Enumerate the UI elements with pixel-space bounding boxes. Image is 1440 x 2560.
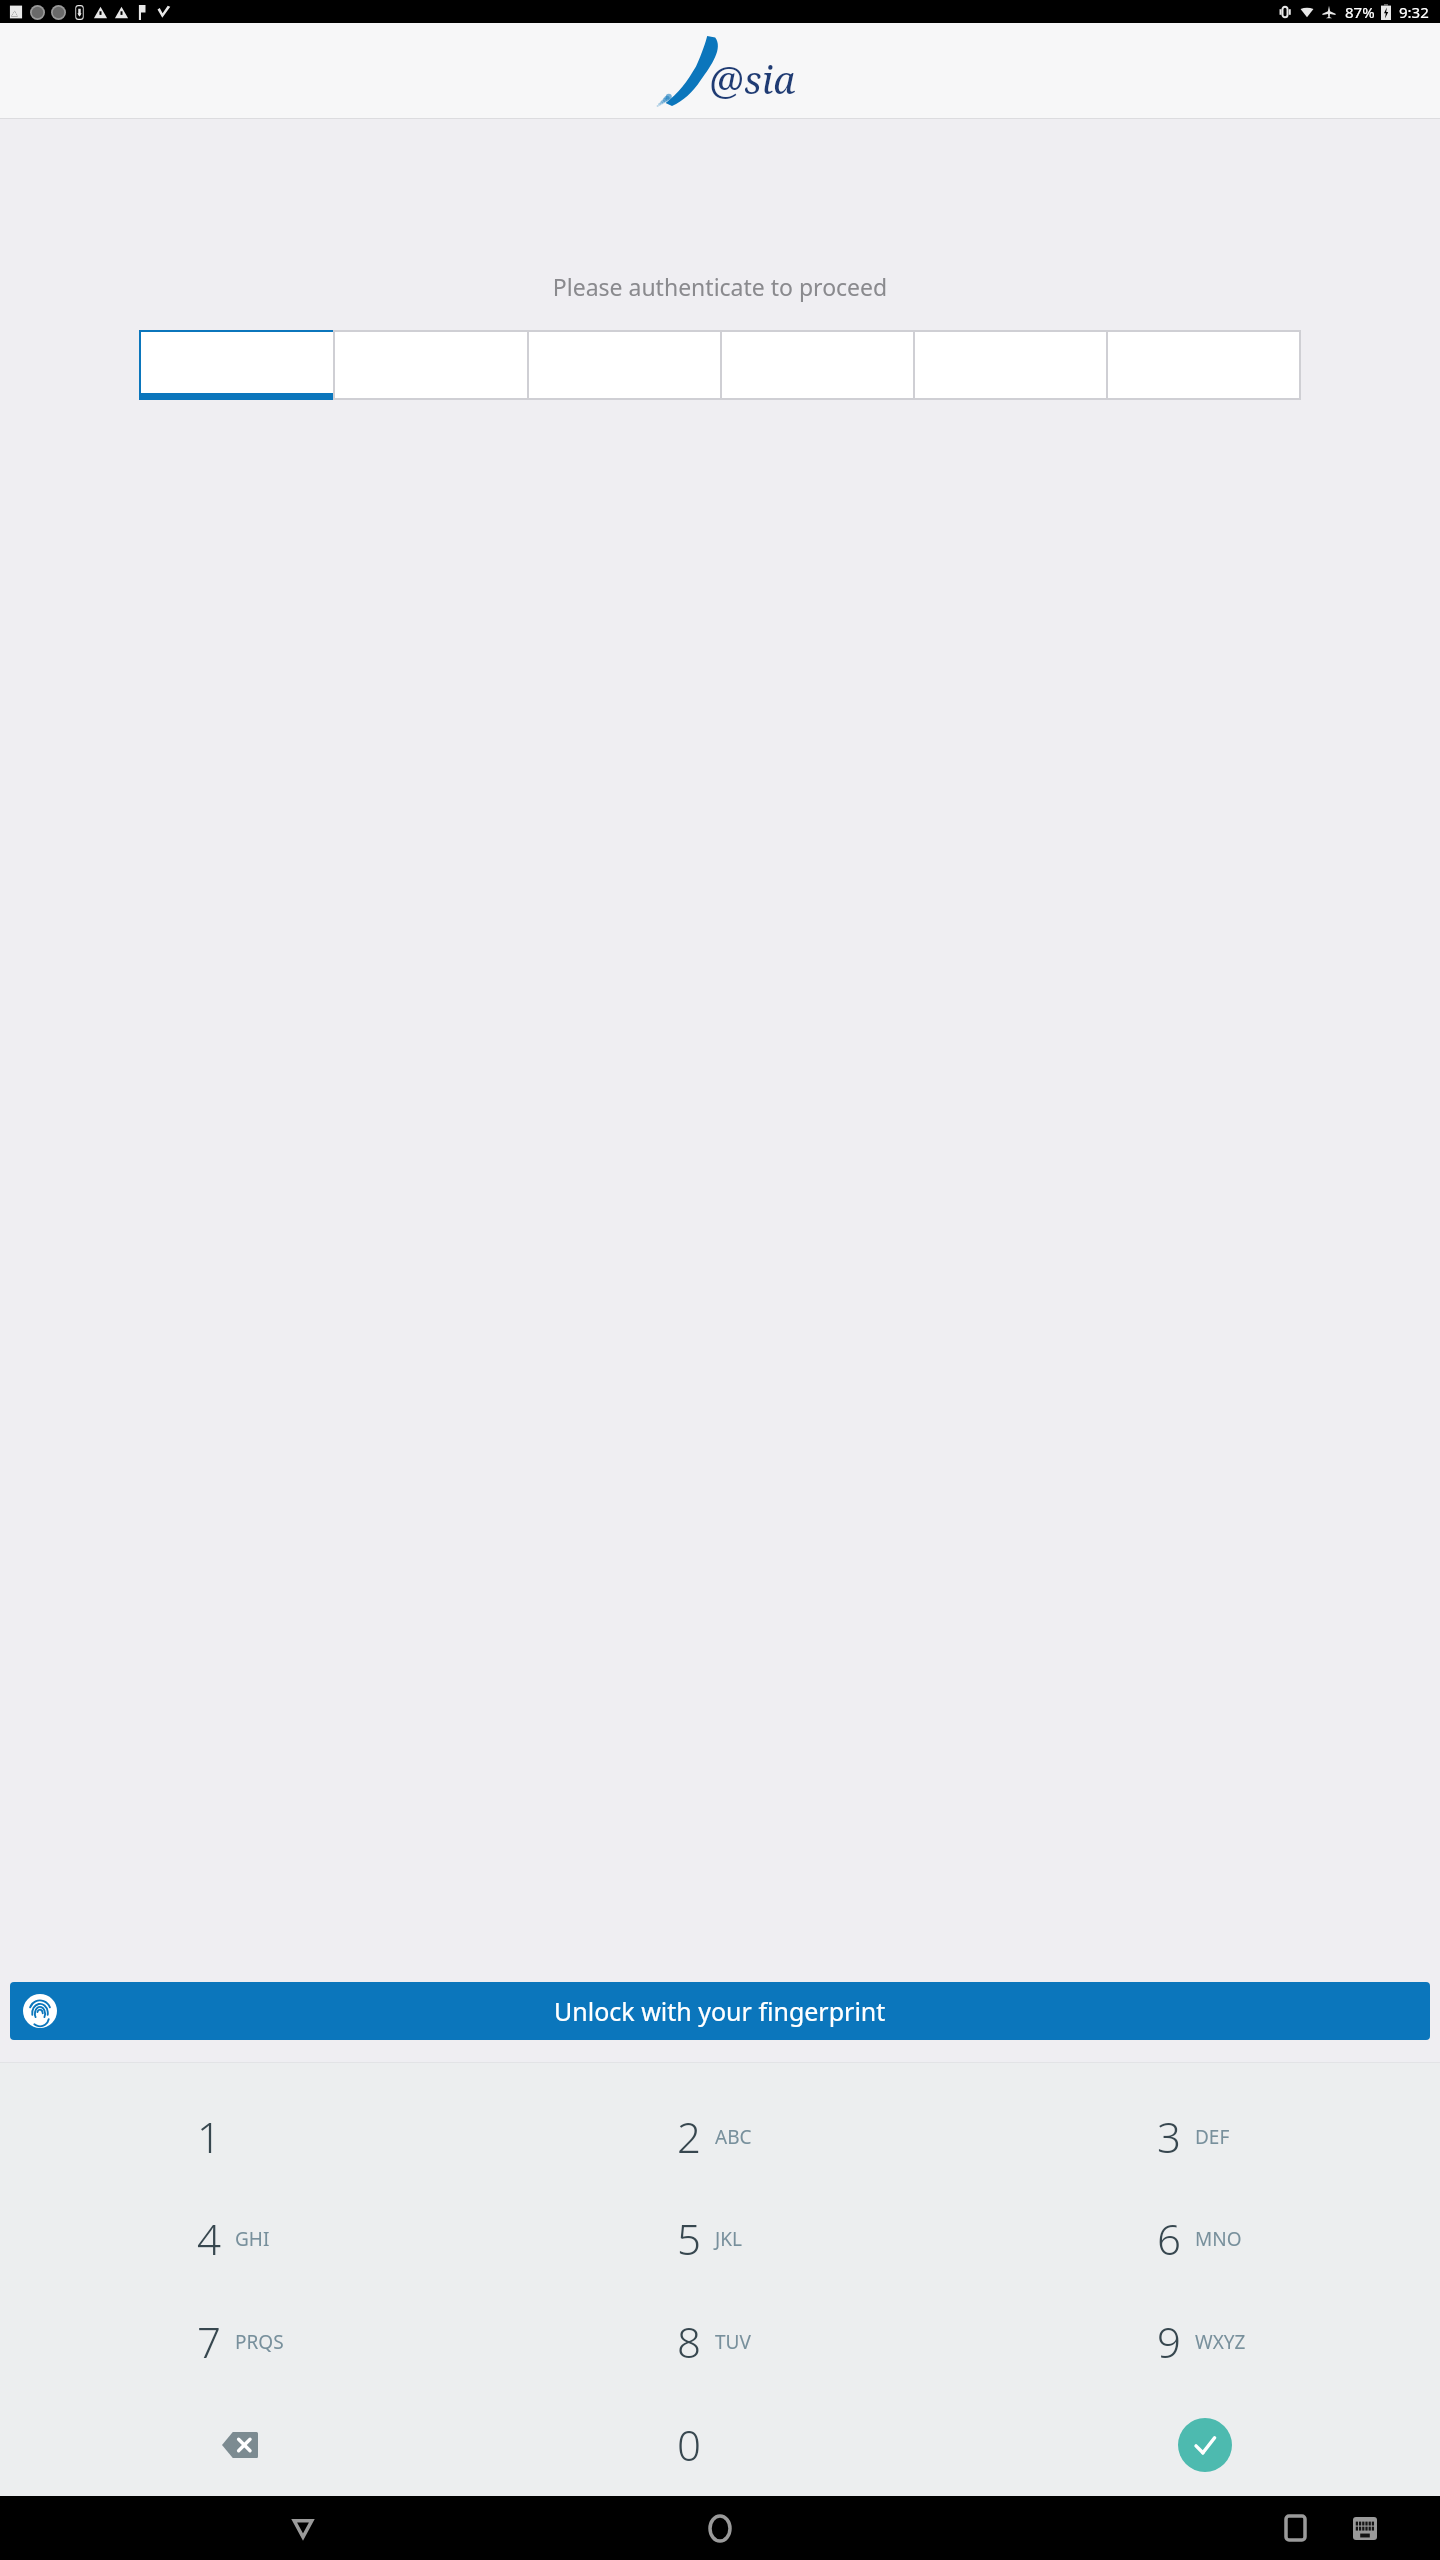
button[interactable] xyxy=(1107,331,1300,399)
staticText: ABC xyxy=(715,2124,752,2150)
button[interactable]: 3 xyxy=(960,2085,1440,2187)
staticText: 9:32 xyxy=(1399,2,1429,22)
button[interactable] xyxy=(140,331,334,399)
staticText: GHI xyxy=(235,2226,270,2252)
button[interactable]: 0 xyxy=(480,2393,960,2496)
button[interactable]: 8 xyxy=(480,2290,960,2393)
staticText: WXYZ xyxy=(1195,2329,1246,2355)
button[interactable]: Confirm xyxy=(1178,2418,1232,2472)
button[interactable]: 6 xyxy=(960,2187,1440,2290)
staticText: Unlock with your fingerprint xyxy=(554,1994,886,2028)
button[interactable] xyxy=(914,331,1107,399)
staticText: 2 xyxy=(677,2108,701,2165)
button[interactable]: Home xyxy=(670,2496,770,2560)
staticText: 4 xyxy=(197,2210,221,2267)
button[interactable]: 5 xyxy=(480,2187,960,2290)
button[interactable]: Recents xyxy=(1260,2496,1330,2560)
staticText: 5 xyxy=(677,2210,701,2267)
button[interactable]: Keyboard xyxy=(1330,2496,1400,2560)
button[interactable]: Unlock with your fingerprint xyxy=(10,1982,1430,2040)
button[interactable]: 4 xyxy=(0,2187,480,2290)
staticText: TUV xyxy=(715,2329,751,2355)
button[interactable]: 7 xyxy=(0,2290,480,2393)
button[interactable] xyxy=(528,331,721,399)
button[interactable]: Back xyxy=(0,2496,605,2560)
staticText: 3 xyxy=(1157,2108,1181,2165)
staticText: 1 xyxy=(197,2108,221,2165)
staticText: 87% xyxy=(1345,2,1375,22)
staticText: 7 xyxy=(197,2313,221,2370)
staticText: 6 xyxy=(1157,2210,1181,2267)
button[interactable]: Backspace xyxy=(0,2393,480,2496)
staticText: DEF xyxy=(1195,2124,1230,2150)
staticText: 0 xyxy=(677,2416,701,2473)
staticText: 9 xyxy=(1157,2313,1181,2370)
button[interactable] xyxy=(721,331,914,399)
button[interactable]: 9 xyxy=(960,2290,1440,2393)
staticText: JKL xyxy=(715,2226,742,2252)
staticText: PRQS xyxy=(235,2329,284,2355)
staticText: 8 xyxy=(677,2313,701,2370)
staticText: Please authenticate to proceed xyxy=(0,271,1440,302)
button[interactable] xyxy=(334,331,528,399)
staticText: @sia xyxy=(709,53,796,105)
staticText: MNO xyxy=(1195,2226,1242,2252)
button[interactable]: 2 xyxy=(480,2085,960,2187)
button[interactable]: 1 xyxy=(0,2085,480,2187)
